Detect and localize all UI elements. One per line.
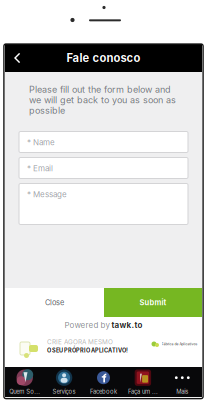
- staticText: Fale conosco: [66, 51, 140, 65]
- staticText: Faça um ...: [128, 388, 158, 395]
- button[interactable]: * Name: [19, 131, 188, 152]
- staticText: Submit: [139, 298, 166, 307]
- button[interactable]: Faça um ...: [123, 367, 163, 397]
- button[interactable]: * Message: [19, 183, 188, 224]
- staticText: Serviços: [53, 388, 76, 395]
- staticText: tawk.to: [111, 320, 142, 330]
- button[interactable]: Mais: [163, 367, 202, 397]
- staticText: possible: [29, 105, 65, 116]
- staticText: Facebook: [90, 388, 117, 395]
- staticText: Quem So...: [9, 388, 40, 395]
- staticText: O SEU PRÓPRIO APLICATIVO!: [47, 347, 128, 354]
- staticText: CRIE AGORA MESMO: [47, 338, 113, 346]
- button[interactable]: * Email: [19, 157, 188, 178]
- button[interactable]: Facebook: [84, 367, 123, 397]
- staticText: Mais: [176, 388, 188, 395]
- button[interactable]: Back: [5, 44, 29, 72]
- staticText: * Email: [27, 163, 53, 173]
- button[interactable]: Submit: [104, 288, 202, 317]
- staticText: * Name: [27, 137, 55, 147]
- button[interactable]: Close: [5, 288, 104, 317]
- button[interactable]: CRIE AGORA MESMO: [5, 333, 202, 367]
- staticText: Please fill out the form below and: [29, 84, 171, 95]
- staticText: Close: [45, 298, 64, 307]
- staticText: * Message: [27, 189, 67, 199]
- staticText: Powered by: [64, 320, 109, 330]
- button[interactable]: Quem So...: [5, 367, 44, 397]
- staticText: Fábrica de Aplicativos: [161, 342, 197, 346]
- staticText: we will get back to you as soon as: [29, 94, 176, 105]
- button[interactable]: Serviços: [44, 367, 84, 397]
